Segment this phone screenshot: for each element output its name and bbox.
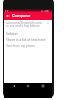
staticText: Sent from my phone: [6, 44, 35, 48]
staticText: cc me and a few others: [6, 24, 40, 28]
button[interactable]: Navigate up: [4, 12, 12, 20]
staticText: someone@example.com: [6, 21, 42, 25]
button[interactable]: Home: [23, 83, 33, 88]
button[interactable]: Back: [9, 83, 19, 88]
button[interactable]: Sent from my phone: [4, 44, 52, 48]
staticText: Compose: [12, 13, 31, 19]
button[interactable]: cc me and a few others: [4, 24, 52, 28]
button[interactable]: Recent apps: [38, 83, 48, 88]
staticText: There is a lot of text here: [6, 37, 46, 41]
staticText: Subject: [6, 31, 18, 35]
button[interactable]: Subject: [4, 31, 52, 35]
button[interactable]: There is a lot of text here: [4, 37, 52, 41]
button[interactable]: someone@example.com: [4, 21, 52, 25]
other: Expand recipients: [46, 21, 50, 25]
